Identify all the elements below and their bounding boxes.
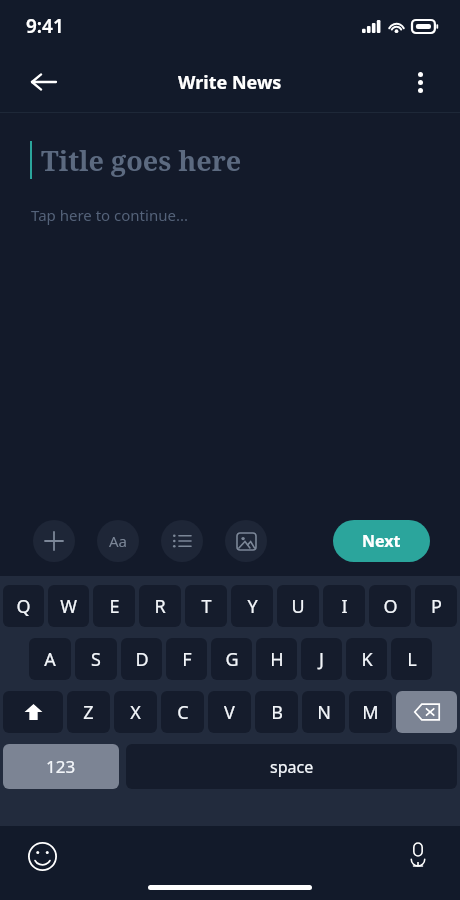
button[interactable]: U — [277, 585, 319, 627]
button[interactable]: Shift — [3, 691, 63, 733]
staticText: O — [383, 594, 398, 619]
button[interactable]: Emoji — [20, 834, 64, 878]
button[interactable]: 123 — [3, 744, 119, 789]
staticText: C — [177, 700, 189, 725]
staticText: E — [109, 594, 120, 619]
staticText: T — [201, 594, 212, 619]
staticText: Tap here to continue... — [31, 205, 188, 225]
staticText: D — [135, 647, 149, 672]
staticText: Q — [16, 594, 31, 619]
staticText: W — [60, 594, 77, 619]
button[interactable]: Backspace — [396, 691, 457, 733]
staticText: I — [341, 594, 348, 619]
staticText: Next — [362, 530, 401, 552]
staticText: H — [270, 647, 284, 672]
staticText: 123 — [46, 755, 76, 778]
button[interactable]: Next — [333, 520, 430, 562]
button[interactable]: Voice input — [398, 834, 438, 874]
staticText: A — [44, 647, 56, 672]
staticText: Z — [83, 700, 94, 725]
staticText: N — [317, 700, 331, 725]
button[interactable]: P — [415, 585, 457, 627]
button[interactable]: F — [166, 638, 207, 680]
button[interactable]: Back — [22, 60, 66, 104]
button[interactable]: S — [75, 638, 117, 680]
button[interactable]: A — [29, 638, 71, 680]
button[interactable]: Y — [231, 585, 273, 627]
staticText: space — [270, 756, 314, 778]
button[interactable]: N — [302, 691, 345, 733]
staticText: L — [407, 647, 417, 672]
staticText: S — [91, 647, 101, 672]
staticText: Write News — [178, 70, 282, 95]
button[interactable]: Text format — [97, 520, 139, 562]
button[interactable]: K — [346, 638, 387, 680]
staticText: V — [224, 700, 235, 725]
button[interactable]: H — [256, 638, 297, 680]
staticText: M — [362, 700, 379, 725]
button[interactable]: O — [369, 585, 411, 627]
button[interactable]: C — [161, 691, 204, 733]
button[interactable]: D — [121, 638, 162, 680]
button[interactable]: W — [48, 585, 89, 627]
button[interactable]: B — [255, 691, 298, 733]
staticText: X — [130, 700, 141, 725]
button[interactable]: Z — [67, 691, 110, 733]
staticText: B — [271, 700, 283, 725]
button[interactable]: Insert image — [225, 520, 267, 562]
button[interactable]: Q — [3, 585, 44, 627]
button[interactable]: space — [126, 744, 457, 789]
staticText: Y — [247, 594, 258, 619]
staticText: K — [361, 647, 373, 672]
button[interactable]: More options — [400, 62, 440, 102]
button[interactable]: I — [323, 585, 365, 627]
staticText: R — [154, 594, 166, 619]
button[interactable]: List — [161, 520, 203, 562]
button[interactable]: M — [349, 691, 392, 733]
button[interactable]: J — [301, 638, 342, 680]
button[interactable]: Title goes here — [0, 113, 460, 506]
staticText: Title goes here — [41, 142, 242, 179]
staticText: Aa — [109, 531, 128, 551]
button[interactable]: L — [391, 638, 432, 680]
button[interactable]: R — [139, 585, 181, 627]
button[interactable]: Add — [33, 520, 75, 562]
button[interactable]: G — [211, 638, 252, 680]
staticText: P — [431, 594, 442, 619]
button[interactable]: T — [185, 585, 227, 627]
staticText: J — [319, 647, 324, 672]
staticText: G — [225, 647, 239, 672]
staticText: U — [291, 594, 305, 619]
staticText: F — [182, 647, 192, 672]
button[interactable]: E — [93, 585, 135, 627]
button[interactable]: V — [208, 691, 251, 733]
staticText: 9:41 — [26, 13, 64, 39]
button[interactable]: X — [114, 691, 157, 733]
